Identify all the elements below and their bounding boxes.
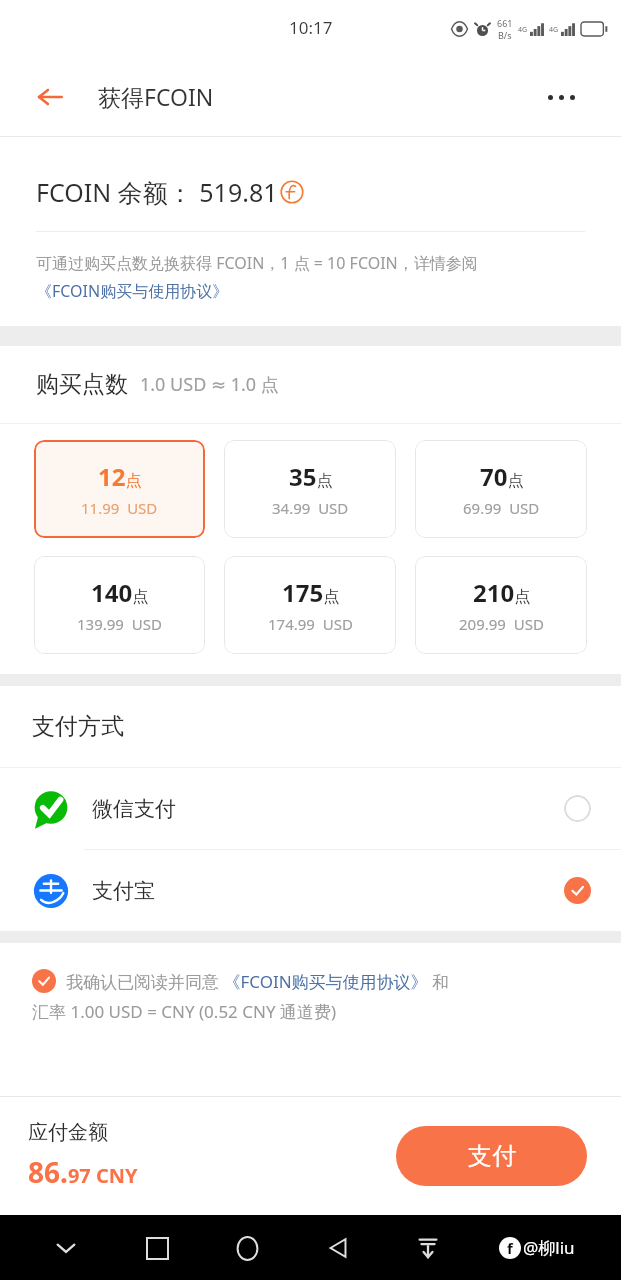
staticText: 《FCOIN购买与使用协议》 [36,280,229,302]
staticText: 购买点数 [36,370,128,399]
button[interactable]: 支付宝 [0,850,621,931]
button[interactable]: 140点 [34,556,205,654]
button[interactable]: 我确认已阅读并同意 《FCOIN购买与使用协议》 和 [32,969,450,993]
button[interactable]: 《FCOIN购买与使用协议》 [36,280,229,302]
button[interactable]: 210点 [415,556,587,654]
staticText: f [507,1238,513,1258]
button[interactable]: Back [30,77,70,117]
staticText: 支付宝 [92,878,155,904]
staticText: 获得FCOIN [98,81,214,112]
staticText: 11.99 USD [81,498,158,518]
staticText: 支付 [468,1141,516,1171]
staticText: FCOIN 余额： 519.81 [36,175,278,209]
button[interactable]: Download [404,1224,452,1272]
button[interactable]: 支付 [396,1126,587,1186]
staticText: 34.99 USD [272,498,349,518]
staticText: 69.99 USD [463,498,540,518]
staticText: 微信支付 [92,796,176,822]
staticText: 174.99 USD [268,614,353,634]
staticText: 140点 [91,576,149,609]
staticText: 应付金额 [28,1120,108,1145]
staticText: 139.99 USD [77,614,162,634]
staticText: 4G [518,25,528,35]
button[interactable]: 微信支付 [0,768,621,849]
staticText: 210点 [473,576,531,609]
button[interactable]: f [495,1236,579,1259]
staticText: @柳liu [523,1236,575,1259]
button[interactable]: Back [314,1224,362,1272]
staticText: 661 [497,17,513,29]
button[interactable]: 70点 [415,440,587,538]
button[interactable]: Hide [42,1224,90,1272]
staticText: 175点 [282,576,340,609]
button[interactable]: 12点 [34,440,205,538]
staticText: 汇率 1.00 USD = CNY (0.52 CNY 通道费) [32,1000,337,1023]
staticText: 支付方式 [32,712,124,741]
button[interactable]: 175点 [224,556,396,654]
staticText: 70点 [480,460,524,493]
staticText: 10:17 [289,16,333,39]
button[interactable]: Recent apps [133,1224,181,1272]
staticText: 可通过购买点数兑换获得 FCOIN，1 点 = 10 FCOIN，详情参阅 [36,252,478,274]
staticText: B/s [498,29,512,41]
button[interactable]: Home [223,1224,271,1272]
button[interactable]: More options [539,75,583,119]
staticText: 1.0 USD ≈ 1.0 点 [140,372,279,397]
staticText: 86.97 CNY [28,1153,138,1191]
staticText: 我确认已阅读并同意 《FCOIN购买与使用协议》 和 [66,970,450,993]
staticText: 12点 [98,460,142,493]
button[interactable]: 35点 [224,440,396,538]
staticText: 4G [549,25,559,35]
staticText: 209.99 USD [459,614,544,634]
staticText: 35点 [289,460,333,493]
